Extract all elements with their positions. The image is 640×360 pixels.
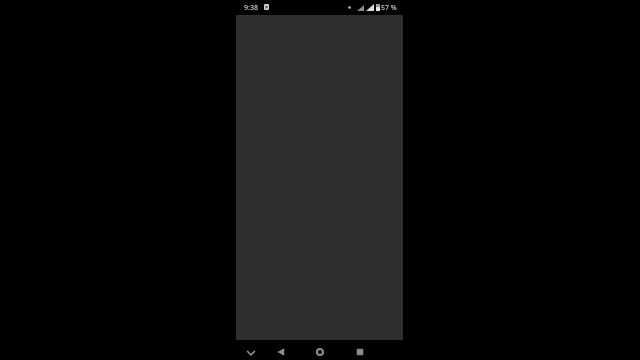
other: Notification	[264, 4, 269, 10]
button[interactable]: Hide keyboard	[239, 343, 263, 360]
staticText: 57 %	[381, 3, 397, 13]
button[interactable]: Back	[269, 342, 293, 360]
button[interactable]: Home	[308, 342, 332, 360]
staticText: 9:38	[244, 3, 258, 13]
button[interactable]: Recent apps	[348, 342, 372, 360]
